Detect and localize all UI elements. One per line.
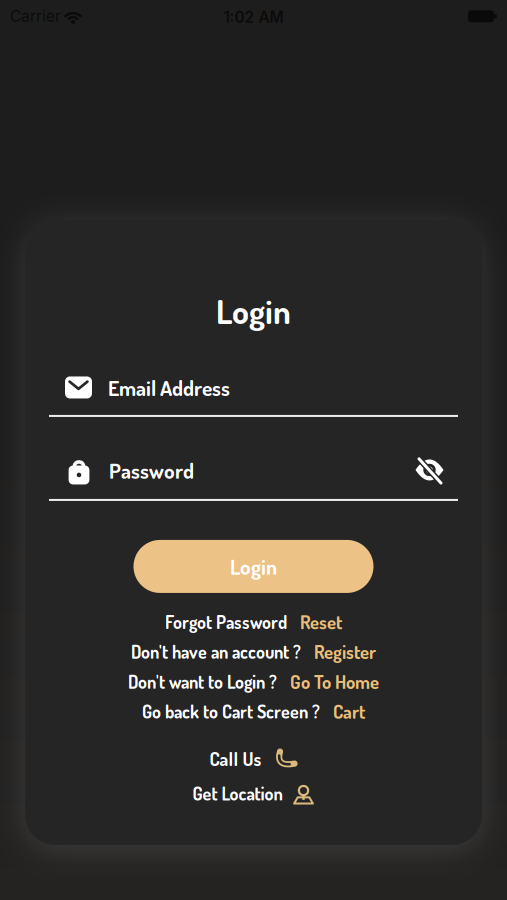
staticText: 1:02 AM [223, 8, 283, 27]
staticText: Go back to Cart Screen ? [142, 700, 320, 723]
staticText: Go To Home [290, 670, 379, 693]
staticText: Login [230, 553, 277, 580]
staticText: Register [314, 640, 376, 663]
button[interactable]: Login [133, 540, 373, 593]
staticText: Don't have an account ? [131, 640, 301, 663]
staticText: Don't want to Login ? [128, 670, 277, 693]
staticText: Forgot Password [165, 611, 287, 633]
staticText: Cart [333, 699, 365, 723]
staticText: Email Address [108, 374, 230, 401]
staticText: Call Us [209, 747, 261, 770]
staticText: Reset [300, 610, 342, 634]
button[interactable]: Call Us [209, 747, 297, 770]
button[interactable]: Cart [333, 699, 365, 723]
staticText: Login [216, 289, 291, 332]
staticText: Get Location [192, 782, 282, 805]
button[interactable]: Show password [415, 458, 444, 482]
staticText: Password [109, 457, 194, 484]
staticText: Carrier [10, 7, 61, 26]
button[interactable]: Go To Home [290, 670, 379, 693]
button[interactable]: Reset [300, 610, 342, 634]
button[interactable]: Register [314, 640, 376, 663]
button[interactable]: Get Location [192, 782, 314, 805]
